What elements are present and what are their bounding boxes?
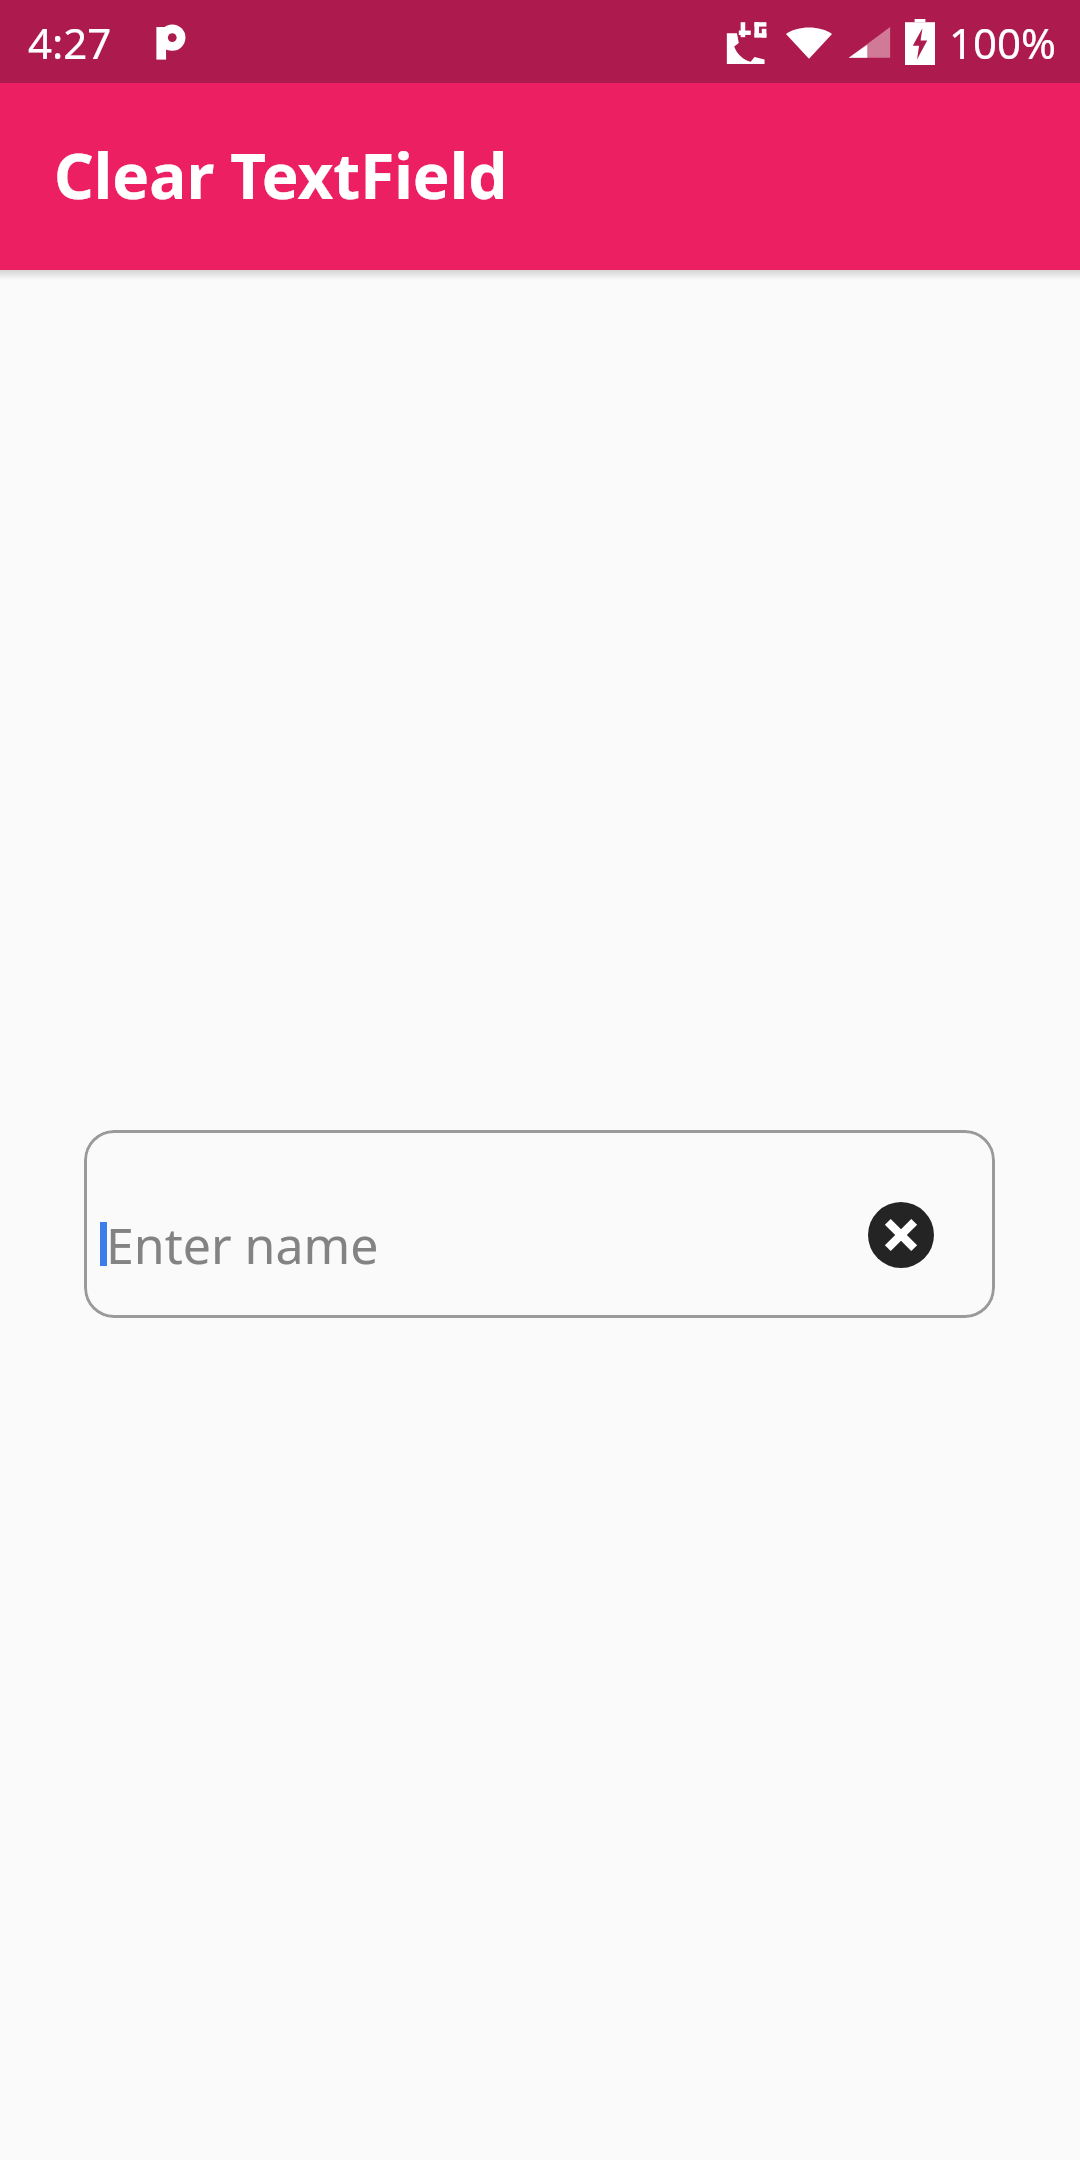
button[interactable]: Enter name [84,1130,995,1318]
staticText: 4:27 [28,14,112,71]
button[interactable]: Clear text [868,1202,934,1268]
staticText: 100% [949,14,1056,71]
staticText: Clear TextField [54,133,508,217]
staticText: Enter name [106,1211,379,1279]
